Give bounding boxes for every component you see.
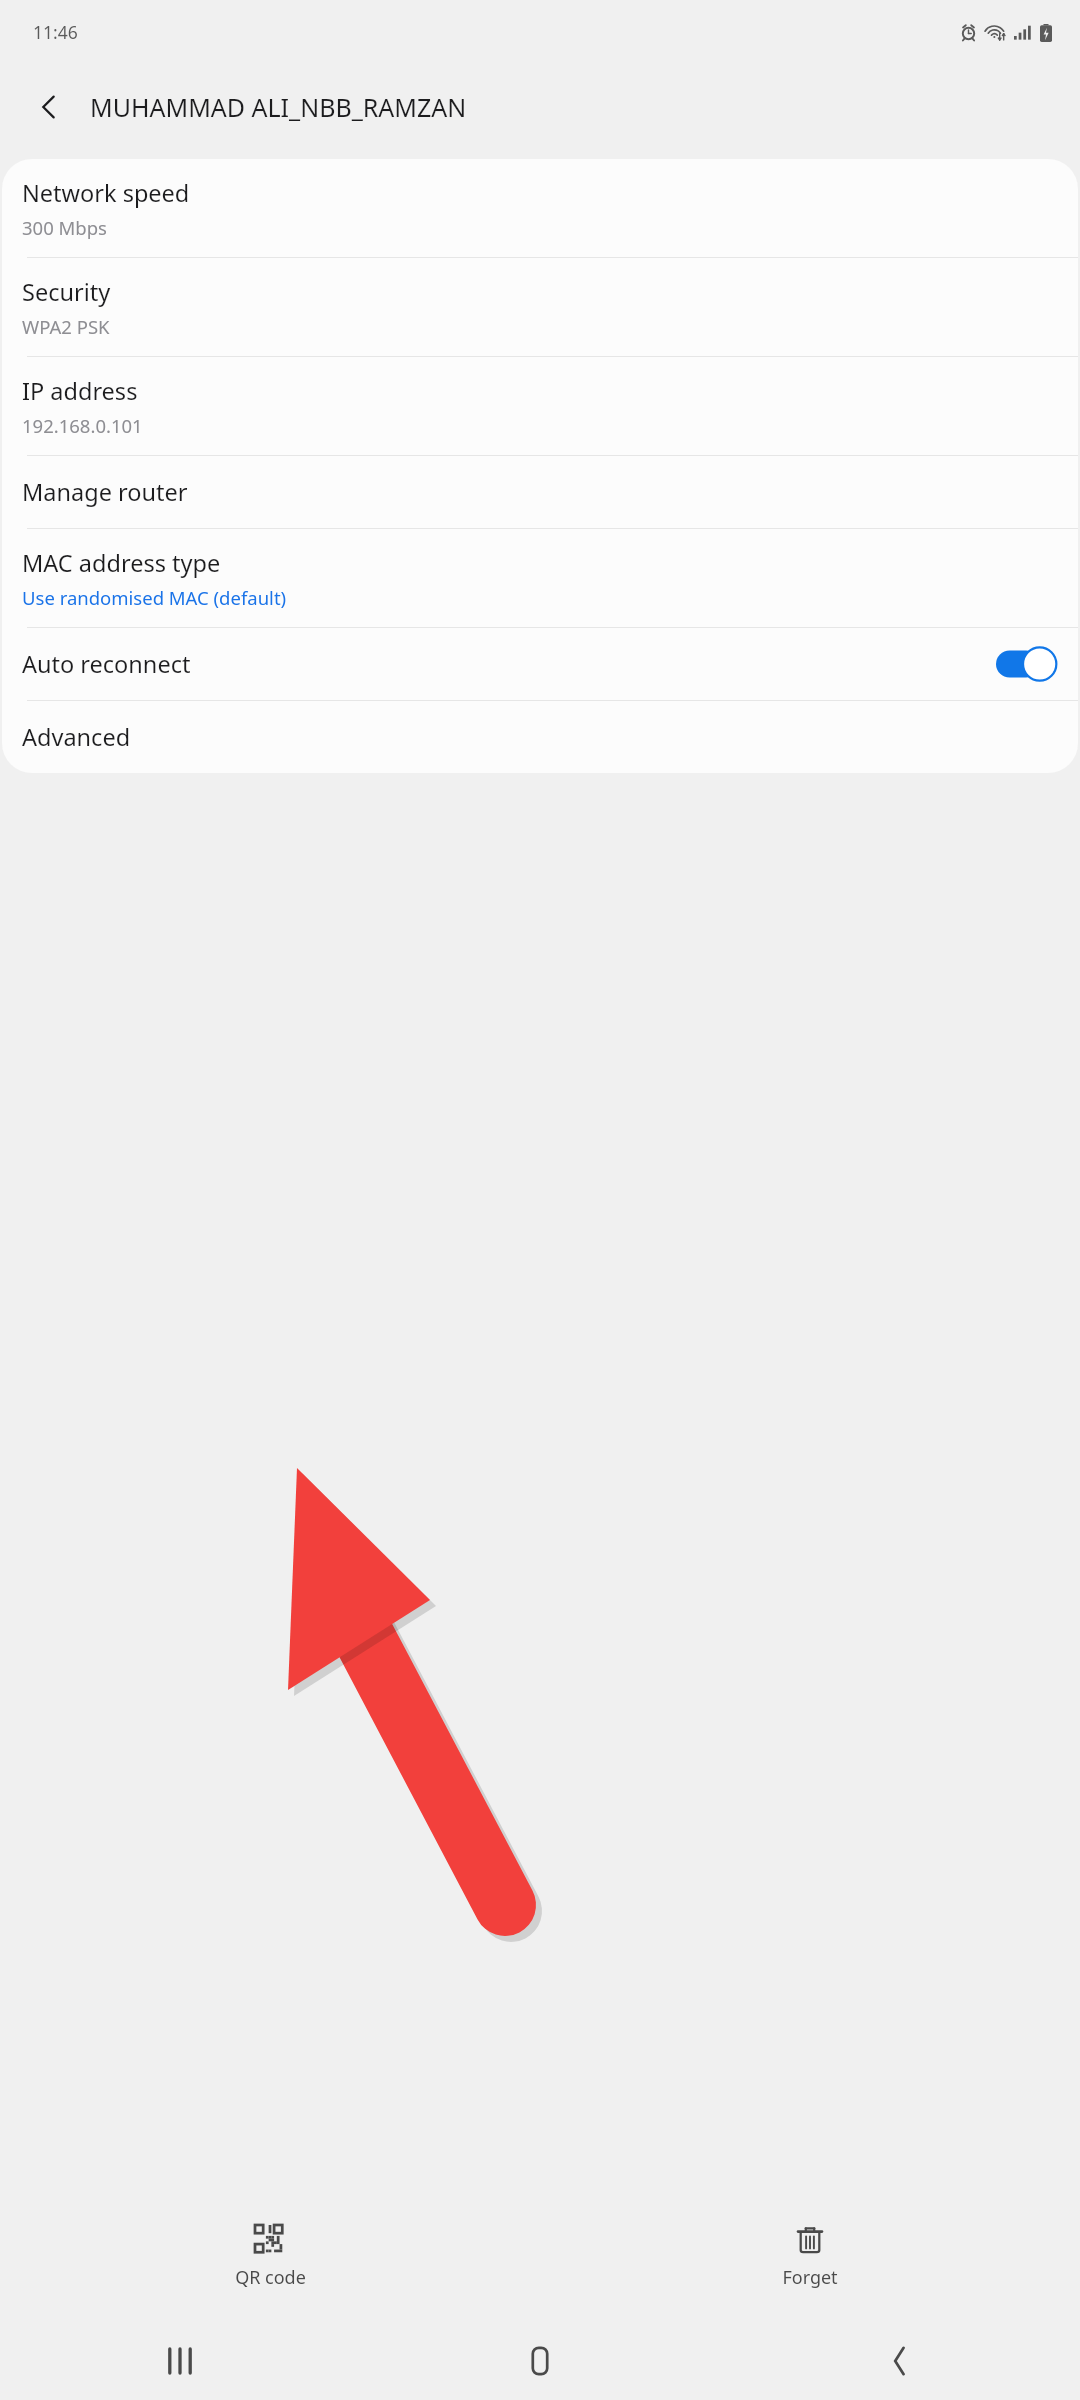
staticText: 192.168.0.101 — [22, 413, 143, 438]
staticText: Forget — [782, 2265, 838, 2290]
staticText: 300 Mbps — [22, 215, 107, 240]
button[interactable]: Auto reconnect toggle — [996, 647, 1052, 681]
staticText: WPA2 PSK — [22, 314, 110, 339]
button[interactable]: Recents — [0, 2322, 360, 2400]
button[interactable]: Home — [360, 2322, 720, 2400]
staticText: Advanced — [22, 721, 131, 753]
button[interactable]: Network speed — [2, 159, 1078, 257]
staticText: 11:46 — [33, 20, 78, 44]
staticText: IP address — [22, 375, 138, 407]
staticText: Manage router — [22, 476, 188, 508]
staticText: Network speed — [22, 177, 190, 209]
staticText: Auto reconnect — [22, 648, 996, 680]
button[interactable]: Manage router — [2, 456, 1078, 528]
button[interactable]: IP address — [2, 357, 1078, 455]
button[interactable]: Forget — [540, 2215, 1080, 2300]
staticText: Security — [22, 276, 111, 308]
staticText: Use randomised MAC (default) — [22, 585, 287, 610]
staticText: MAC address type — [22, 547, 221, 579]
button[interactable]: MAC address type — [2, 529, 1078, 627]
button[interactable]: Back — [20, 78, 78, 136]
button[interactable]: Security — [2, 258, 1078, 356]
button[interactable]: QR code — [0, 2215, 540, 2300]
staticText: QR code — [235, 2265, 306, 2290]
button[interactable]: Advanced — [2, 701, 1078, 773]
button[interactable]: Auto reconnect — [2, 628, 1078, 700]
button[interactable]: Back — [720, 2322, 1080, 2400]
staticText: MUHAMMAD ALI_NBB_RAMZAN — [90, 90, 467, 124]
